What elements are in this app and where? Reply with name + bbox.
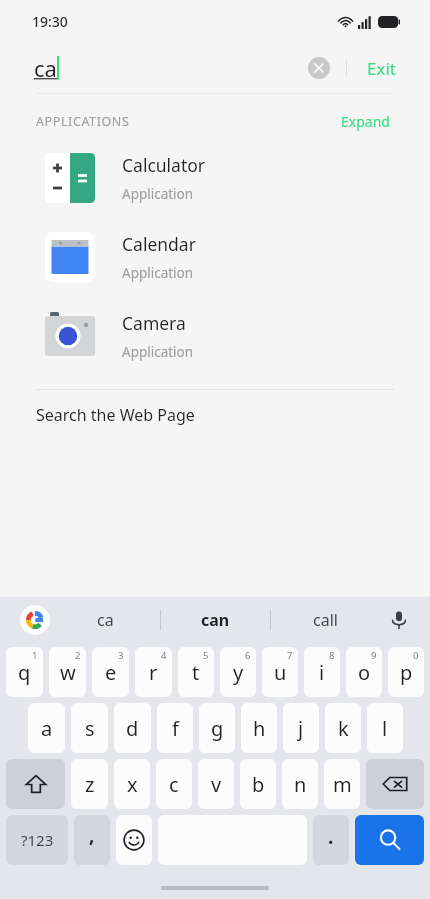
button[interactable]: z bbox=[71, 759, 108, 809]
staticText: 8 bbox=[329, 649, 335, 662]
staticText: Application bbox=[122, 264, 194, 282]
staticText: ?123 bbox=[21, 830, 54, 850]
staticText: 1 bbox=[32, 649, 38, 662]
staticText: 6 bbox=[245, 649, 251, 662]
button[interactable]: d bbox=[114, 703, 151, 753]
button[interactable]: Expand bbox=[337, 108, 394, 135]
button[interactable]: i bbox=[304, 647, 340, 697]
staticText: 19:30 bbox=[32, 12, 68, 31]
button[interactable]: l bbox=[367, 703, 403, 753]
staticText: can bbox=[201, 609, 230, 631]
button[interactable]: t bbox=[178, 647, 214, 697]
staticText: j bbox=[298, 715, 304, 742]
staticText: i bbox=[319, 659, 325, 686]
button[interactable]: p bbox=[388, 647, 424, 697]
staticText: 0 bbox=[413, 649, 419, 662]
button[interactable]: Calculator bbox=[0, 138, 430, 217]
button[interactable]: Shift bbox=[6, 759, 65, 809]
staticText: ca bbox=[97, 609, 114, 631]
button[interactable]: Backspace bbox=[366, 759, 424, 809]
staticText: , bbox=[89, 822, 95, 848]
staticText: 9 bbox=[371, 649, 377, 662]
button[interactable]: h bbox=[241, 703, 277, 753]
staticText: APPLICATIONS bbox=[36, 113, 130, 130]
staticText: m bbox=[333, 771, 352, 798]
staticText: s bbox=[85, 715, 95, 742]
staticText: b bbox=[252, 771, 265, 798]
button[interactable]: Camera bbox=[0, 296, 430, 375]
button[interactable]: Calendar bbox=[0, 217, 430, 296]
button[interactable]: m bbox=[324, 759, 360, 809]
button[interactable]: j bbox=[283, 703, 319, 753]
button[interactable]: Exit bbox=[359, 51, 404, 86]
staticText: c bbox=[169, 771, 179, 798]
button[interactable]: c bbox=[156, 759, 192, 809]
staticText: Expand bbox=[341, 112, 390, 131]
staticText: 2 bbox=[75, 649, 81, 662]
button[interactable]: Google bbox=[20, 605, 50, 635]
staticText: t bbox=[192, 659, 200, 686]
staticText: 7 bbox=[287, 649, 293, 662]
staticText: 3 bbox=[118, 649, 124, 662]
button[interactable]: . bbox=[313, 815, 349, 865]
staticText: Application bbox=[122, 343, 194, 361]
staticText: r bbox=[149, 659, 158, 686]
button[interactable]: n bbox=[282, 759, 318, 809]
staticText: n bbox=[294, 771, 307, 798]
button[interactable]: ca bbox=[50, 597, 160, 643]
button[interactable]: q bbox=[6, 647, 43, 697]
staticText: o bbox=[358, 659, 371, 686]
button[interactable]: Voice input bbox=[380, 601, 418, 639]
button[interactable]: s bbox=[71, 703, 108, 753]
staticText: Exit bbox=[367, 57, 396, 80]
button[interactable]: Emoji bbox=[116, 815, 152, 865]
button[interactable]: y bbox=[220, 647, 256, 697]
staticText: w bbox=[60, 659, 76, 686]
staticText: d bbox=[126, 715, 139, 742]
staticText: 5 bbox=[203, 649, 209, 662]
staticText: f bbox=[172, 715, 179, 742]
staticText: 4 bbox=[161, 649, 167, 662]
button[interactable]: call bbox=[271, 597, 380, 643]
button[interactable]: Search the Web Page bbox=[0, 390, 430, 440]
staticText: p bbox=[400, 659, 413, 686]
staticText: k bbox=[338, 715, 349, 742]
button[interactable]: can bbox=[161, 597, 270, 643]
button[interactable]: w bbox=[49, 647, 86, 697]
button[interactable]: , bbox=[74, 815, 110, 865]
staticText: Calculator bbox=[122, 153, 206, 177]
staticText: g bbox=[211, 715, 224, 742]
staticText: . bbox=[328, 824, 334, 850]
staticText: y bbox=[233, 659, 244, 686]
staticText: a bbox=[41, 715, 53, 742]
staticText: x bbox=[127, 771, 138, 798]
staticText: l bbox=[382, 715, 388, 742]
staticText: h bbox=[253, 715, 266, 742]
button[interactable]: k bbox=[325, 703, 361, 753]
button[interactable]: b bbox=[240, 759, 276, 809]
button[interactable]: g bbox=[199, 703, 235, 753]
staticText: ca bbox=[34, 53, 57, 83]
staticText: e bbox=[105, 659, 117, 686]
button[interactable]: Search bbox=[355, 815, 424, 865]
button[interactable]: a bbox=[28, 703, 65, 753]
button[interactable]: Clear bbox=[308, 57, 330, 79]
staticText: z bbox=[85, 771, 95, 798]
staticText: Search the Web Page bbox=[36, 404, 195, 426]
button[interactable]: r bbox=[135, 647, 172, 697]
staticText: u bbox=[274, 659, 287, 686]
staticText: call bbox=[313, 609, 338, 631]
staticText: v bbox=[211, 771, 222, 798]
staticText: q bbox=[18, 659, 31, 686]
button[interactable]: ?123 bbox=[6, 815, 68, 865]
button[interactable]: x bbox=[114, 759, 150, 809]
button[interactable]: o bbox=[346, 647, 382, 697]
button[interactable]: u bbox=[262, 647, 298, 697]
staticText: Camera bbox=[122, 311, 186, 335]
button[interactable]: f bbox=[157, 703, 193, 753]
staticText: Calendar bbox=[122, 232, 196, 256]
button[interactable]: v bbox=[198, 759, 234, 809]
button[interactable]: e bbox=[92, 647, 129, 697]
staticText: Application bbox=[122, 185, 194, 203]
